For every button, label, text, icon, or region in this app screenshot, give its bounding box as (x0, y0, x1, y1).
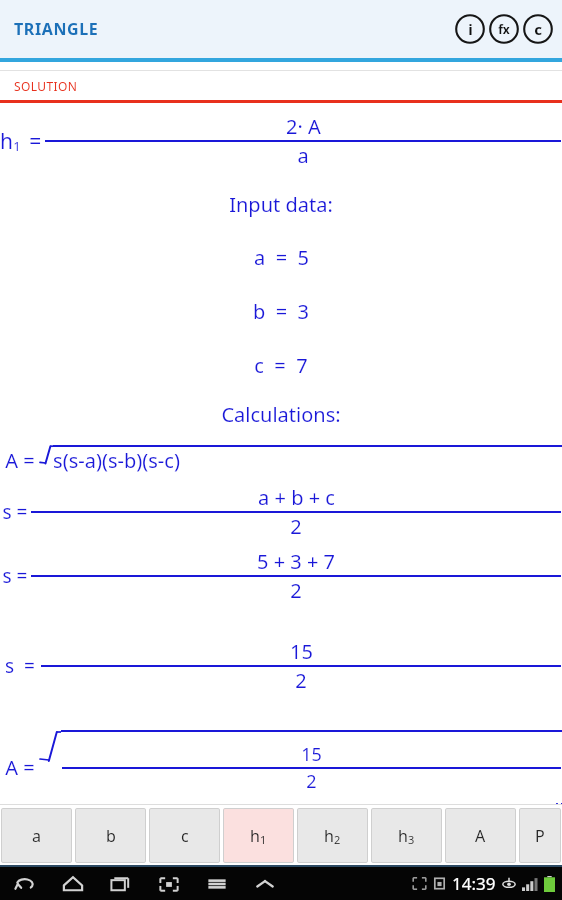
button[interactable]: Recents (104, 867, 138, 900)
button[interactable]: Formulas (488, 13, 520, 45)
staticText: s(s-a)(s-b)(s-c) (53, 447, 180, 474)
button[interactable]: Menu (200, 867, 234, 900)
button[interactable]: Home (56, 867, 90, 900)
button[interactable]: Info (454, 13, 486, 45)
staticText: a = 5 (254, 244, 309, 271)
staticText: 2 (306, 769, 317, 794)
staticText: A (475, 825, 486, 847)
staticText: fx (498, 21, 510, 37)
staticText: a + b + c (258, 484, 335, 511)
staticText: 2 (290, 513, 302, 540)
button[interactable]: Back (8, 867, 42, 900)
staticText: s = (0, 499, 30, 525)
button[interactable]: Expand (248, 867, 282, 900)
button[interactable]: SOLUTION (0, 71, 562, 100)
staticText: 2 (334, 832, 341, 847)
button[interactable]: b (75, 808, 146, 863)
staticText: 15 (290, 638, 313, 665)
staticText: a (297, 142, 309, 169)
staticText: s = (0, 653, 40, 679)
staticText: 2· A (286, 113, 321, 140)
staticText: h (324, 825, 334, 847)
staticText: c (534, 19, 542, 39)
staticText: A = (0, 754, 40, 781)
staticText: 1 (13, 137, 21, 155)
staticText: TRIANGLE (14, 18, 99, 40)
button[interactable]: a (1, 808, 72, 863)
staticText: = (21, 127, 44, 156)
staticText: 2 (295, 667, 307, 694)
staticText: s = (0, 563, 30, 589)
staticText: 15 (301, 742, 322, 767)
button[interactable]: A (445, 808, 516, 863)
staticText: 14:39 (452, 872, 496, 895)
staticText: 1 (260, 832, 267, 847)
staticText: h (250, 825, 260, 847)
staticText: SOLUTION (14, 78, 78, 94)
staticText: 2 (290, 577, 302, 604)
staticText: c (181, 825, 189, 847)
button[interactable]: Clear (522, 13, 554, 45)
staticText: P (535, 825, 545, 847)
staticText: 5 + 3 + 7 (257, 548, 335, 575)
staticText: A = (0, 447, 40, 474)
staticText: i (468, 19, 473, 39)
staticText: c = 7 (254, 352, 308, 379)
button[interactable]: h (371, 808, 442, 863)
staticText: 3 (408, 832, 415, 847)
button[interactable]: c (149, 808, 220, 863)
button[interactable]: P (519, 808, 561, 863)
staticText: h (0, 127, 13, 156)
button[interactable]: h (297, 808, 368, 863)
button[interactable]: Screenshot (152, 867, 186, 900)
staticText: h (398, 825, 408, 847)
staticText: b (106, 825, 116, 847)
button[interactable]: h (223, 808, 294, 863)
staticText: a (32, 825, 41, 847)
staticText: Input data: (229, 191, 333, 218)
staticText: Calculations: (221, 401, 341, 428)
staticText: b = 3 (253, 298, 309, 325)
